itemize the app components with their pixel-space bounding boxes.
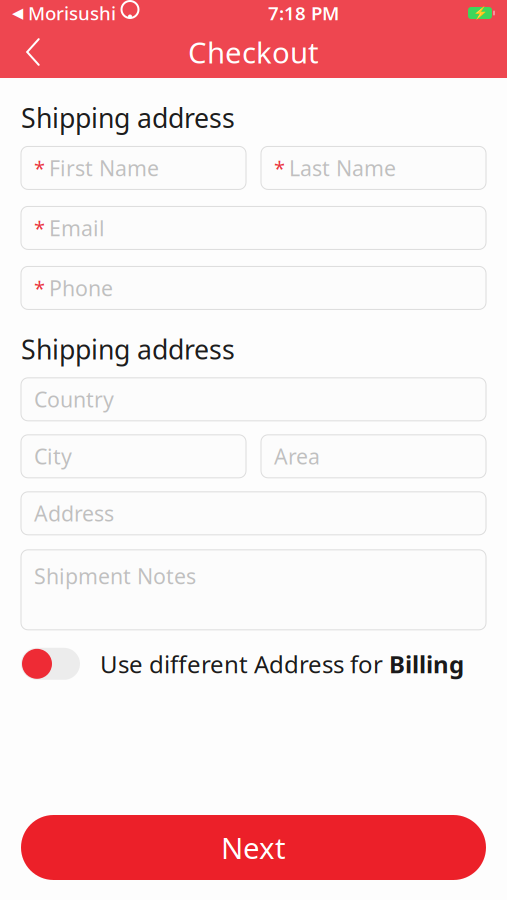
staticText: City	[34, 442, 72, 470]
staticText: First Name	[49, 154, 159, 182]
staticText: Next	[221, 828, 286, 867]
staticText: *	[274, 155, 285, 181]
staticText: Email	[49, 214, 105, 242]
staticText: ◀	[12, 5, 23, 21]
staticText: Use different Address for	[100, 648, 389, 680]
staticText: Billing	[389, 648, 464, 680]
staticText: Morisushi	[28, 1, 116, 25]
button[interactable]: Next	[21, 815, 486, 880]
staticText: Checkout	[188, 32, 319, 71]
staticText: ⚡	[472, 6, 487, 20]
staticText: Country	[34, 385, 114, 413]
staticText: *	[34, 155, 45, 181]
staticText: Address	[34, 499, 114, 527]
button[interactable]: Use different address for billing	[21, 648, 80, 680]
staticText: *	[34, 215, 45, 241]
staticText: Shipping address	[21, 331, 235, 367]
staticText: Area	[274, 442, 320, 470]
button[interactable]: Back	[10, 29, 56, 75]
staticText: Last Name	[289, 154, 396, 182]
staticText: Shipment Notes	[34, 562, 196, 590]
staticText: Shipping address	[21, 100, 235, 135]
staticText: *	[34, 275, 45, 301]
staticText: 7:18 PM	[268, 1, 339, 25]
staticText: Phone	[49, 274, 113, 302]
